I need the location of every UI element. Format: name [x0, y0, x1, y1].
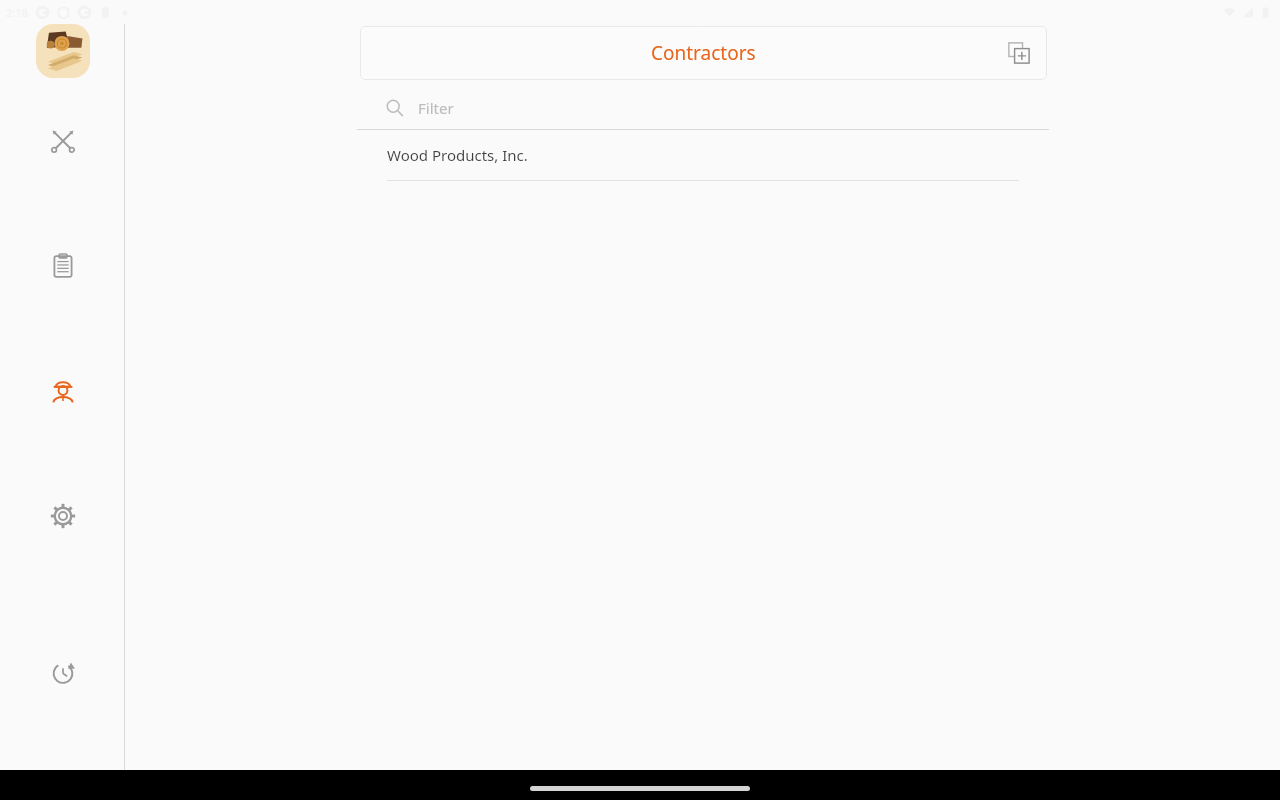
staticText: Contractors [651, 40, 756, 66]
button[interactable]: Contractors [40, 368, 85, 413]
button[interactable]: Add contractor [1001, 35, 1037, 71]
button[interactable]: Estimates [40, 243, 85, 288]
button[interactable]: Settings [40, 493, 85, 538]
staticText: Filter [418, 98, 454, 118]
staticText: Wood Products, Inc. [387, 145, 528, 165]
button[interactable]: Filter [357, 86, 1049, 130]
button[interactable]: Wood Products, Inc. [357, 130, 1049, 180]
button[interactable]: App logo [36, 24, 90, 78]
button[interactable]: Design tools [40, 118, 85, 163]
button[interactable]: History [40, 650, 85, 695]
